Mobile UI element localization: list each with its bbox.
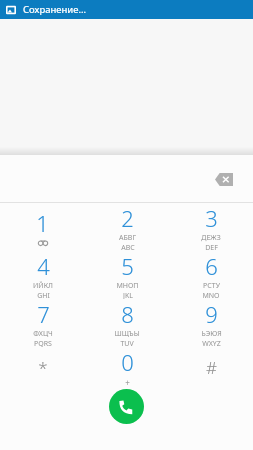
staticText: ИЙКЛ	[33, 281, 53, 291]
staticText: PQRS	[34, 339, 52, 347]
button[interactable]: 1	[0, 203, 85, 251]
staticText: ШЩЪЫ	[114, 329, 140, 339]
staticText: 6	[205, 251, 218, 281]
other: Saving image	[6, 5, 16, 15]
staticText: 7	[37, 299, 50, 329]
staticText: ABC	[121, 243, 135, 251]
staticText: РСТУ	[203, 281, 220, 291]
staticText: 5	[121, 251, 134, 281]
button[interactable]: 3	[169, 203, 253, 251]
staticText: WXYZ	[202, 339, 221, 347]
staticText: +	[125, 377, 130, 387]
button[interactable]: 4	[0, 251, 85, 299]
staticText: Сохранение...	[23, 3, 87, 16]
button[interactable]: 7	[0, 299, 85, 347]
staticText: TUV	[120, 339, 134, 347]
staticText: ЬЭЮЯ	[201, 329, 222, 339]
staticText: АБВГ	[119, 233, 136, 243]
staticText: JKL	[123, 291, 133, 299]
staticText: 9	[205, 299, 218, 329]
button[interactable]: 5	[85, 251, 169, 299]
button[interactable]: *	[0, 347, 85, 387]
staticText: #	[206, 356, 217, 379]
staticText: 2	[121, 203, 134, 233]
staticText: MNO	[202, 291, 220, 299]
staticText: 8	[121, 299, 134, 329]
staticText: *	[38, 356, 48, 379]
button[interactable]: Backspace	[207, 164, 241, 194]
button[interactable]: 0	[85, 347, 169, 387]
button[interactable]: 6	[169, 251, 253, 299]
button[interactable]: Saving image	[0, 0, 253, 19]
staticText: 1	[36, 208, 49, 238]
staticText: DEF	[205, 243, 218, 251]
staticText: 0	[121, 347, 134, 377]
staticText: 4	[37, 251, 50, 281]
button[interactable]: 2	[85, 203, 169, 251]
staticText: МНОП	[116, 281, 139, 291]
staticText: GHI	[37, 291, 50, 299]
button[interactable]: 8	[85, 299, 169, 347]
button[interactable]: #	[169, 347, 253, 387]
staticText: 3	[205, 203, 218, 233]
button[interactable]: Call	[109, 389, 144, 424]
staticText: ДЕЖЗ	[201, 233, 221, 243]
button[interactable]: 9	[169, 299, 253, 347]
staticText: ФХЦЧ	[33, 329, 53, 339]
